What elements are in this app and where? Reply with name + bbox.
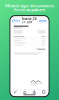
- button[interactable]: Markup: [11, 89, 20, 94]
- button[interactable]: Share: [29, 89, 39, 94]
- staticText: Invoice_2471.pdf: [22, 17, 37, 24]
- staticText: from anywhere: [14, 7, 45, 11]
- button[interactable]: More: [39, 89, 48, 94]
- button[interactable]: Done: [38, 19, 47, 22]
- staticText: Done: [39, 19, 47, 22]
- staticText: Files: [14, 19, 20, 22]
- staticText: Fill and sign documents: [5, 3, 54, 7]
- button[interactable]: Back to Files: [12, 19, 21, 22]
- button[interactable]: Sign: [20, 89, 29, 94]
